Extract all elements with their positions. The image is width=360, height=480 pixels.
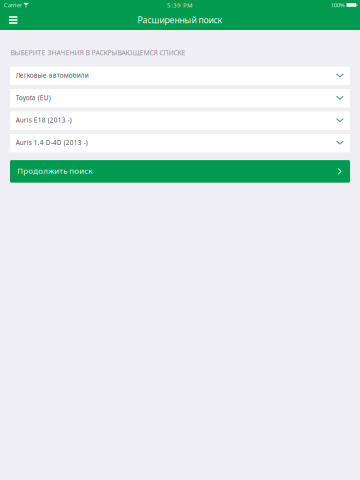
- staticText: Carrier: [4, 1, 22, 9]
- staticText: Расширенный поиск: [137, 14, 222, 26]
- button[interactable]: Auris 1.4 D-4D (2013 -): [10, 134, 350, 152]
- button[interactable]: Menu: [2, 10, 24, 30]
- button[interactable]: Легковые автомобили: [10, 67, 350, 85]
- staticText: 5:39 PM: [167, 1, 193, 9]
- button[interactable]: Auris E18 (2013 -): [10, 111, 350, 130]
- staticText: Auris 1.4 D-4D (2013 -): [16, 138, 88, 147]
- staticText: Продолжить поиск: [17, 165, 92, 176]
- staticText: Auris E18 (2013 -): [16, 116, 72, 124]
- staticText: Toyota (EU): [16, 93, 51, 102]
- staticText: 100%: [331, 1, 345, 9]
- staticText: Легковые автомобили: [16, 71, 89, 80]
- button[interactable]: Продолжить поиск: [10, 160, 350, 183]
- button[interactable]: Toyota (EU): [10, 89, 350, 108]
- staticText: ВЫБЕРИТЕ ЗНАЧЕНИЯ В РАСКРЫВАЮЩЕМСЯ СПИСК…: [10, 48, 185, 57]
